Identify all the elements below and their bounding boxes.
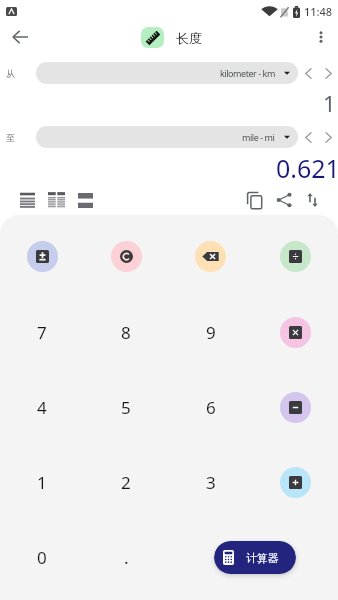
staticText: 3 (206, 471, 216, 494)
button[interactable]: More options (308, 24, 334, 50)
button[interactable]: List view (13, 187, 42, 213)
button[interactable]: 1 (0, 445, 84, 520)
button[interactable]: Next unit (318, 63, 338, 83)
button[interactable]: mile - mi (36, 126, 298, 148)
staticText: mile - mi (242, 131, 275, 143)
button[interactable]: Plus (280, 467, 311, 498)
staticText: 1 (323, 88, 336, 118)
button[interactable]: Plus minus (27, 241, 58, 272)
staticText: 5 (121, 396, 131, 419)
button[interactable]: 2 (84, 445, 168, 520)
staticText: 至 (6, 132, 15, 143)
button[interactable]: 4 (0, 370, 84, 445)
button[interactable]: Minus (280, 392, 311, 423)
button[interactable]: Back (6, 23, 34, 51)
button[interactable]: 0 (0, 520, 84, 595)
staticText: 7 (37, 321, 47, 344)
button[interactable]: 7 (0, 294, 84, 370)
button[interactable]: . (84, 520, 168, 595)
button[interactable]: 3 (168, 445, 253, 520)
staticText: . (124, 546, 129, 569)
button[interactable]: Next unit (318, 127, 338, 147)
button[interactable]: Card view (71, 187, 100, 213)
staticText: 9 (206, 321, 216, 344)
button[interactable]: Clear (111, 241, 142, 272)
button[interactable]: Backspace (195, 241, 226, 272)
staticText: 0.621 (276, 151, 338, 185)
button[interactable]: Column view (42, 187, 71, 213)
button[interactable]: Copy (239, 187, 269, 213)
staticText: 长度 (176, 30, 202, 46)
staticText: 8 (121, 321, 131, 344)
button[interactable]: Previous unit (298, 127, 318, 147)
button[interactable]: Share (269, 187, 299, 213)
button[interactable]: 9 (168, 294, 253, 370)
staticText: 4 (37, 396, 47, 419)
staticText: kilometer - km (220, 67, 275, 79)
staticText: 0 (37, 546, 47, 569)
staticText: 2 (121, 471, 131, 494)
button[interactable]: Previous unit (298, 63, 318, 83)
button[interactable]: 5 (84, 370, 168, 445)
staticText: 从 (6, 68, 15, 79)
button[interactable]: 6 (168, 370, 253, 445)
button[interactable]: 8 (84, 294, 168, 370)
button[interactable]: Swap units (299, 187, 325, 213)
staticText: 计算器 (246, 551, 279, 565)
staticText: 6 (206, 396, 216, 419)
staticText: 1 (37, 471, 47, 494)
button[interactable]: Divide (280, 241, 311, 272)
button[interactable]: 计算器 (214, 541, 296, 574)
button[interactable]: Multiply (280, 317, 311, 348)
button[interactable]: kilometer - km (36, 62, 298, 84)
staticText: 11:48 (304, 4, 333, 19)
